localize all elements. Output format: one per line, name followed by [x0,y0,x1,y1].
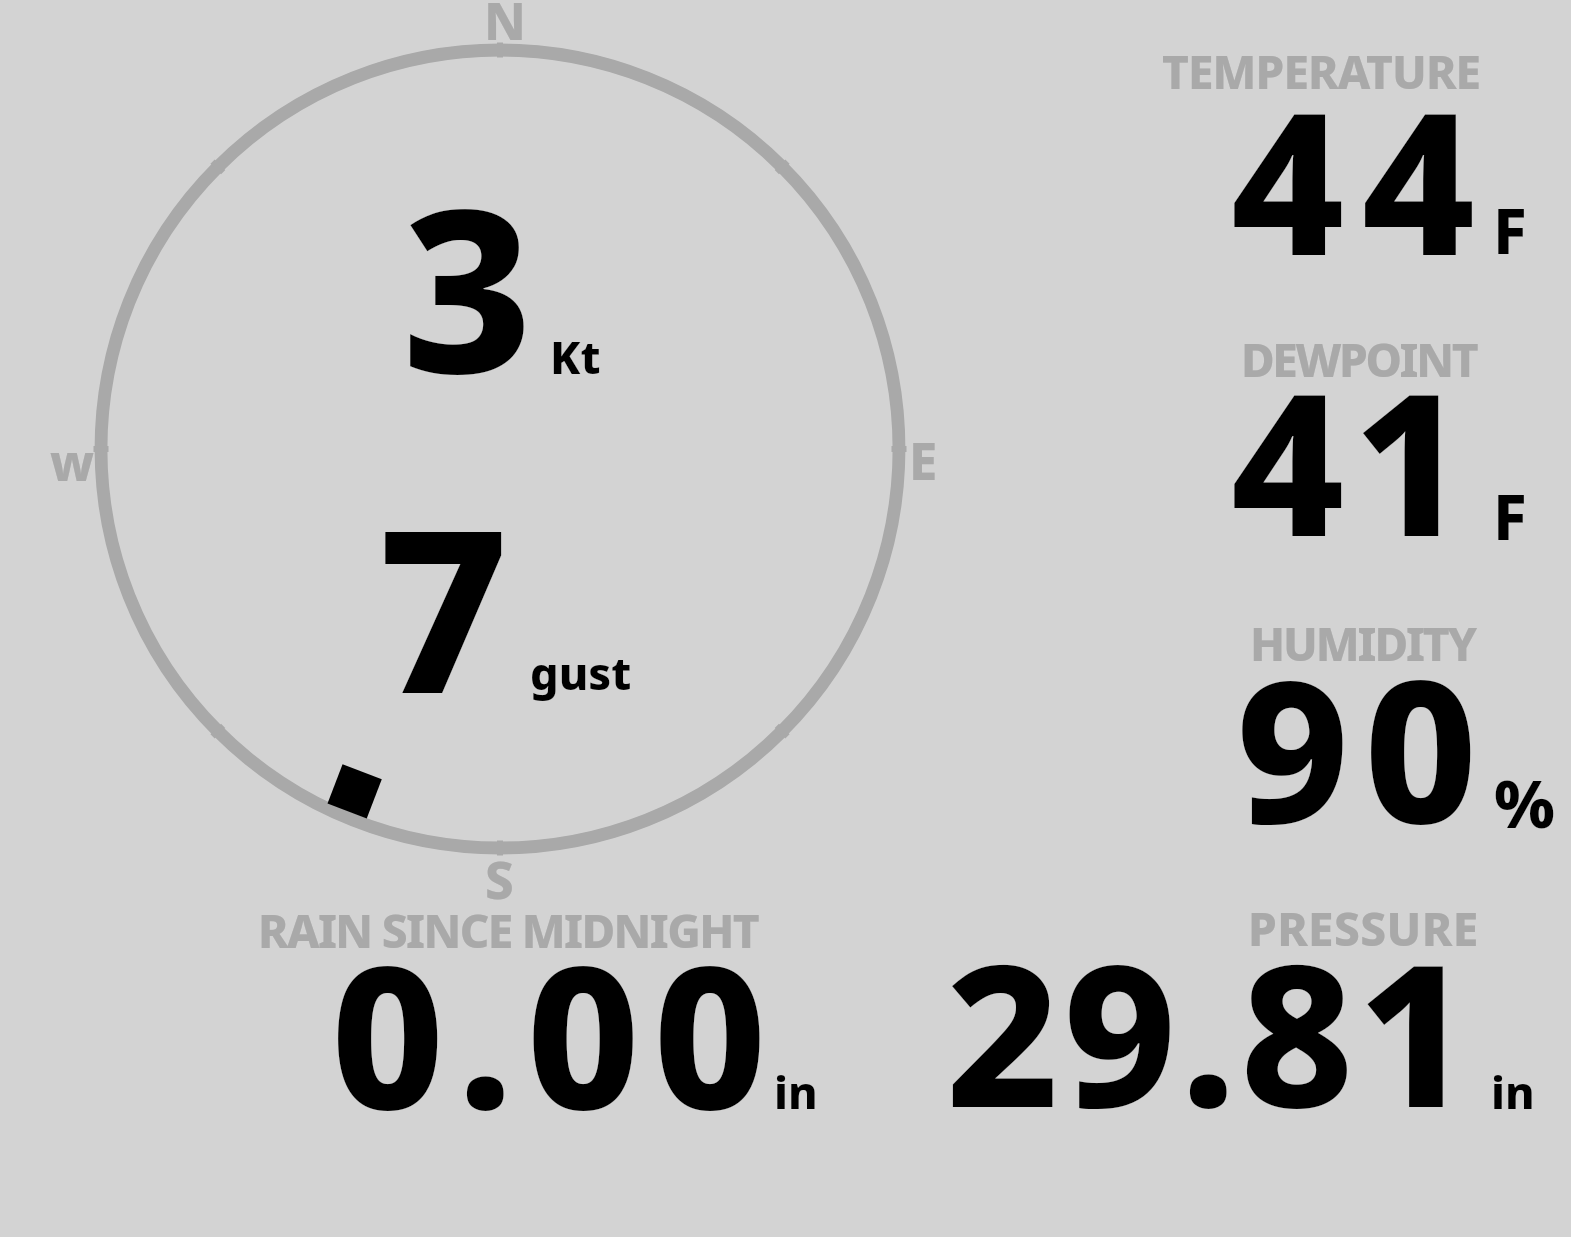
staticText: N [484,0,526,54]
staticText: w [50,428,95,496]
staticText: 44 [1231,45,1493,312]
button[interactable]: Wind direction compass, south south-west [80,29,920,869]
staticText: PRESSURE [1248,897,1479,960]
staticText: 0.00 [331,899,780,1166]
staticText: S [485,844,514,913]
staticText: 41 [1231,326,1476,593]
staticText: in [774,1061,818,1122]
staticText: 29.81 [946,897,1475,1164]
staticText: 90 [1236,613,1492,880]
staticText: TEMPERATURE [1162,40,1481,103]
button[interactable] [1100,315,1571,585]
button[interactable]: Wind 3 knots, gusting 7 knots [360,120,660,720]
button[interactable] [880,885,1571,1155]
button[interactable] [230,885,850,1155]
staticText: HUMIDITY [1250,612,1476,675]
staticText: RAIN SINCE MIDNIGHT [258,899,758,962]
button[interactable] [1100,600,1571,870]
staticText: F [1493,188,1527,272]
staticText: 3 [402,131,533,439]
staticText: E [909,425,938,494]
staticText: 7 [378,451,509,759]
staticText: % [1494,757,1555,847]
staticText: F [1493,474,1527,558]
staticText: DEWPOINT [1241,328,1477,391]
button[interactable] [1100,30,1571,300]
staticText: in [1491,1061,1535,1122]
staticText: Kt [550,326,601,387]
staticText: gust [530,642,632,703]
